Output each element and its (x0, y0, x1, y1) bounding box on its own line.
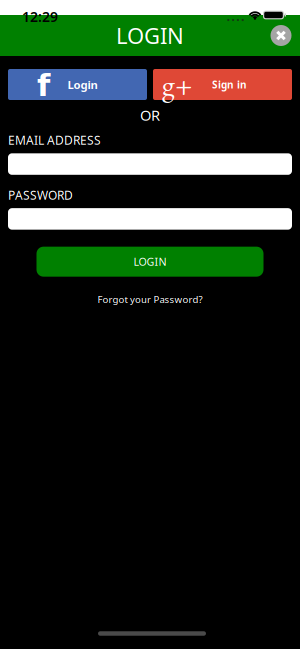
staticText: your (130, 293, 151, 306)
button[interactable]: Sign in with Google (153, 69, 292, 100)
staticText: Password? (153, 293, 202, 306)
staticText: LOGIN (116, 20, 184, 50)
staticText: g+ (162, 65, 192, 104)
staticText: f (37, 68, 50, 103)
staticText: Forgot (97, 293, 127, 306)
staticText: OR (140, 105, 160, 125)
button[interactable]: Login with Facebook (8, 69, 147, 100)
staticText: PASSWORD (8, 187, 73, 203)
staticText: LOGIN (133, 254, 166, 269)
button[interactable]: Email address (0, 153, 300, 175)
button[interactable]: Close (270, 25, 291, 46)
button[interactable]: Password (0, 208, 300, 230)
staticText: Login (67, 77, 97, 92)
button[interactable]: LOGIN (36, 247, 263, 277)
staticText: EMAIL ADDRESS (8, 132, 101, 148)
staticText: Sign in (212, 78, 247, 91)
staticText: 12:29 (22, 7, 58, 26)
button[interactable]: Forgot (97, 293, 202, 306)
